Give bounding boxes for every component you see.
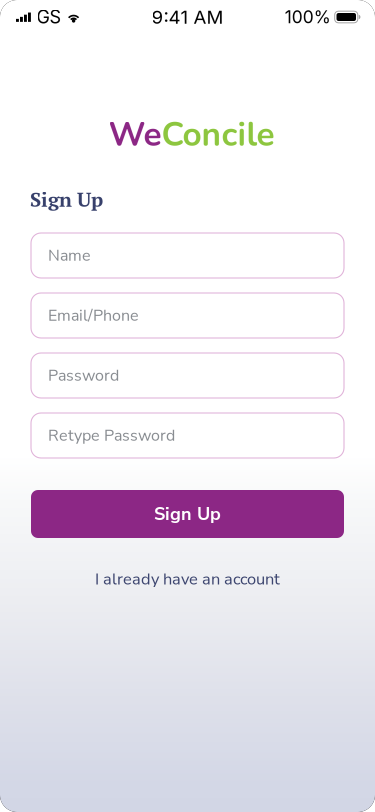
button[interactable]: Password: [31, 353, 344, 398]
staticText: 100%: [285, 6, 331, 27]
button[interactable]: Name: [31, 233, 344, 278]
button[interactable]: Email/Phone: [31, 293, 344, 338]
staticText: Sign Up: [30, 186, 103, 212]
staticText: Retype Password: [48, 425, 175, 446]
staticText: Email/Phone: [48, 305, 139, 326]
staticText: I already have an account: [95, 568, 280, 590]
button[interactable]: Retype Password: [31, 413, 344, 458]
staticText: Password: [48, 365, 119, 386]
staticText: Concile: [161, 112, 274, 157]
staticText: 9:41 AM: [151, 6, 223, 28]
button[interactable]: Sign Up: [31, 490, 344, 538]
button[interactable]: I already have an account: [0, 567, 375, 591]
staticText: Sign Up: [154, 502, 221, 526]
staticText: GS: [36, 6, 61, 28]
staticText: Name: [48, 245, 91, 266]
staticText: We: [108, 112, 161, 157]
